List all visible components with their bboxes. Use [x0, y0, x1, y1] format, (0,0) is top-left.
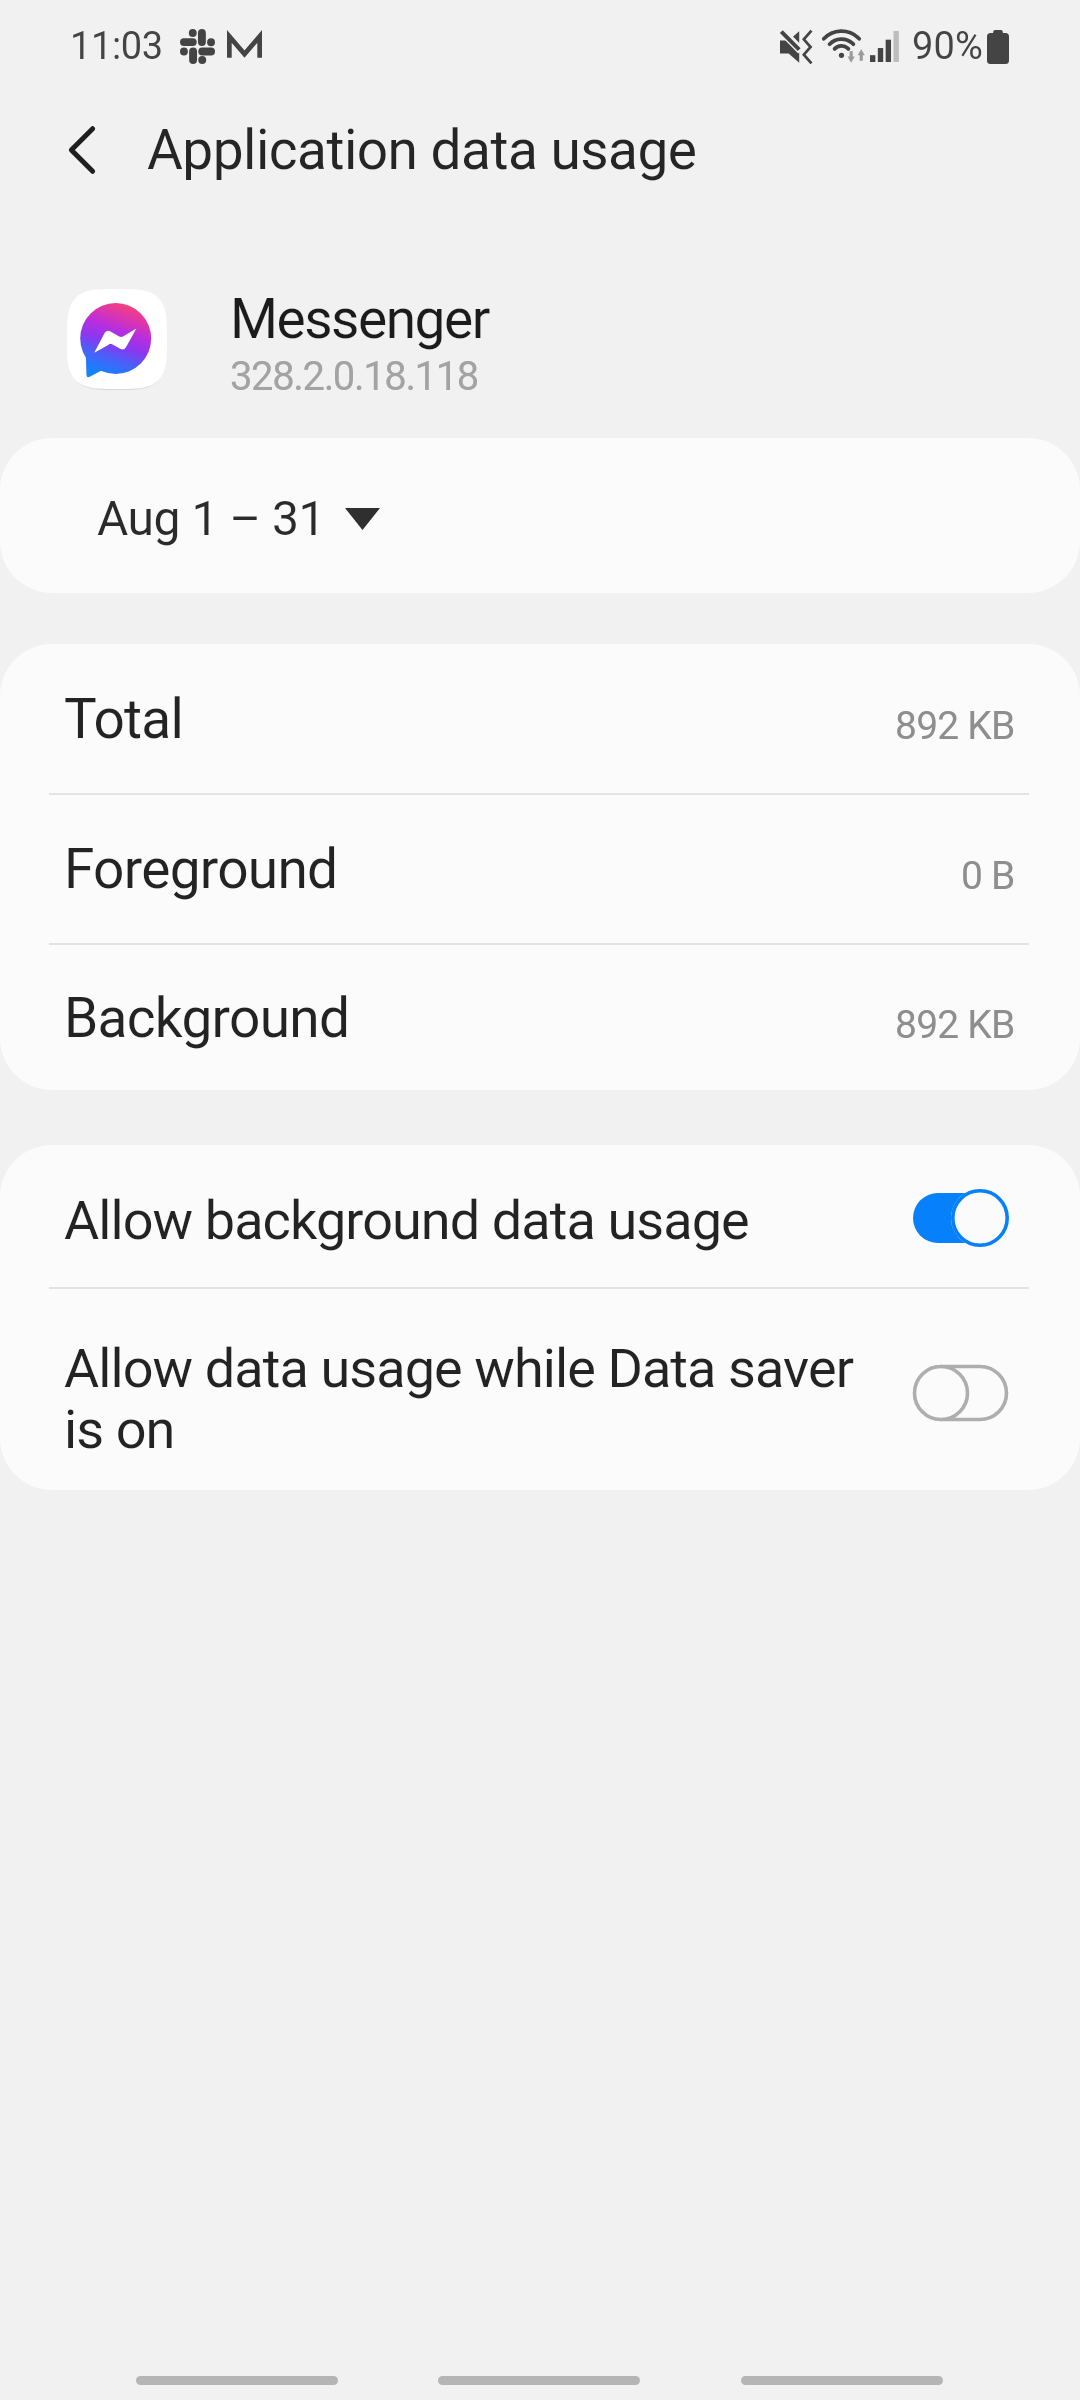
button[interactable]: Total: [0, 644, 1080, 793]
button[interactable]: On: [913, 1188, 1009, 1248]
button[interactable]: Navigate up: [26, 94, 138, 206]
staticText: 328.2.0.18.118: [230, 353, 478, 400]
button[interactable]: Background: [0, 945, 1080, 1090]
button[interactable]: Back: [741, 2356, 943, 2400]
staticText: 11:03: [70, 24, 163, 69]
staticText: Aug 1 – 31: [97, 490, 326, 546]
staticText: 90%: [912, 24, 983, 69]
button[interactable]: Allow background data usage: [0, 1145, 1080, 1287]
staticText: 892 KB: [895, 703, 1015, 749]
button[interactable]: Off: [913, 1363, 1009, 1423]
staticText: 0 B: [961, 853, 1015, 899]
staticText: Background: [64, 986, 350, 1050]
staticText: 892 KB: [895, 1002, 1015, 1048]
staticText: Allow data usage while Data saver is on: [64, 1337, 893, 1461]
button[interactable]: Home: [438, 2356, 640, 2400]
staticText: Allow background data usage: [64, 1189, 893, 1252]
button[interactable]: Foreground: [0, 795, 1080, 943]
button[interactable]: Allow data usage while Data saver is on: [0, 1289, 1080, 1490]
staticText: Foreground: [64, 837, 338, 901]
button[interactable]: Aug 1 – 31: [0, 438, 1080, 593]
button[interactable]: Recent apps: [136, 2356, 338, 2400]
staticText: Application data usage: [147, 118, 697, 182]
staticText: Total: [64, 687, 184, 751]
staticText: Messenger: [230, 287, 489, 351]
